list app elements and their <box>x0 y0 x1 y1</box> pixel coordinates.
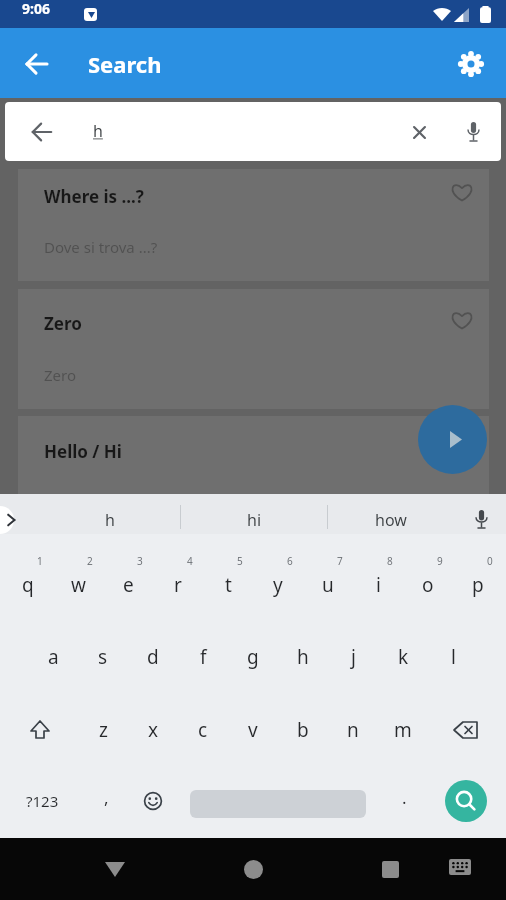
button[interactable] <box>129 778 177 824</box>
button[interactable]: . <box>380 774 428 820</box>
button[interactable] <box>91 845 139 893</box>
staticText: 0 <box>487 554 493 568</box>
button[interactable] <box>229 845 277 893</box>
staticText: v <box>248 717 258 743</box>
staticText: a <box>48 644 59 670</box>
staticText: h <box>93 120 103 142</box>
button[interactable] <box>447 40 495 88</box>
staticText: f <box>200 644 207 670</box>
button[interactable]: g <box>229 634 277 680</box>
staticText: . <box>402 786 407 809</box>
button[interactable]: y <box>254 562 302 608</box>
staticText: Zero <box>44 365 77 385</box>
button[interactable] <box>18 416 489 494</box>
button[interactable]: hi <box>181 500 327 540</box>
staticText: z <box>99 717 108 743</box>
staticText: h <box>297 644 309 670</box>
button[interactable] <box>366 845 414 893</box>
staticText: 9:06 <box>22 0 50 18</box>
staticText: q <box>22 572 34 598</box>
button[interactable] <box>418 405 487 474</box>
staticText: y <box>273 572 283 598</box>
button[interactable]: s <box>79 634 127 680</box>
staticText: , <box>104 786 109 809</box>
staticText: m <box>394 717 412 743</box>
staticText: l <box>451 644 456 670</box>
button[interactable]: x <box>129 707 177 753</box>
button[interactable] <box>18 169 489 281</box>
staticText: j <box>351 644 356 670</box>
button[interactable]: u <box>304 562 352 608</box>
button[interactable]: l <box>429 634 477 680</box>
staticText: d <box>147 644 159 670</box>
button[interactable]: h <box>40 500 180 540</box>
button[interactable]: i <box>354 562 402 608</box>
staticText: r <box>174 572 182 598</box>
button[interactable]: q <box>4 562 52 608</box>
button[interactable]: h <box>5 102 501 161</box>
staticText: ?123 <box>26 791 59 811</box>
staticText: u <box>322 572 334 598</box>
button[interactable]: a <box>29 634 77 680</box>
staticText: w <box>71 572 86 598</box>
button[interactable] <box>442 707 490 753</box>
staticText: 2 <box>87 554 93 568</box>
staticText: 4 <box>187 554 193 568</box>
button[interactable]: r <box>154 562 202 608</box>
staticText: 1 <box>37 554 43 568</box>
staticText: 6 <box>287 554 293 568</box>
button[interactable]: p <box>454 562 502 608</box>
button[interactable]: z <box>79 707 127 753</box>
staticText: 8 <box>387 554 393 568</box>
staticText: Dove si trova ...? <box>44 237 158 257</box>
staticText: b <box>297 717 309 743</box>
button[interactable]: how <box>327 500 455 540</box>
staticText: Where is ...? <box>44 185 144 208</box>
button[interactable]: d <box>129 634 177 680</box>
button[interactable]: o <box>404 562 452 608</box>
button[interactable]: k <box>379 634 427 680</box>
staticText: x <box>148 717 159 743</box>
staticText: how <box>375 509 407 531</box>
staticText: 3 <box>137 554 143 568</box>
button[interactable] <box>445 780 487 822</box>
button[interactable]: , <box>82 774 130 820</box>
staticText: g <box>247 644 259 670</box>
button[interactable]: e <box>104 562 152 608</box>
staticText: c <box>198 717 208 743</box>
staticText: 5 <box>237 554 243 568</box>
button[interactable]: j <box>329 634 377 680</box>
staticText: Search <box>88 49 162 79</box>
staticText: s <box>98 644 108 670</box>
button[interactable]: f <box>179 634 227 680</box>
button[interactable] <box>18 289 489 409</box>
staticText: n <box>347 717 359 743</box>
staticText: 9 <box>437 554 443 568</box>
button[interactable]: c <box>179 707 227 753</box>
button[interactable]: ?123 <box>16 778 68 824</box>
staticText: t <box>225 572 232 598</box>
staticText: o <box>422 572 434 598</box>
button[interactable] <box>13 68 61 116</box>
button[interactable]: m <box>379 707 427 753</box>
staticText: hi <box>247 509 262 531</box>
staticText: Hello / Hi <box>44 440 122 463</box>
button[interactable] <box>438 845 482 889</box>
button[interactable] <box>0 506 14 534</box>
button[interactable]: v <box>229 707 277 753</box>
button[interactable]: t <box>204 562 252 608</box>
button[interactable]: h <box>279 634 327 680</box>
staticText: e <box>123 572 134 598</box>
staticText: k <box>398 644 409 670</box>
staticText: h <box>105 509 115 531</box>
staticText: i <box>376 572 381 598</box>
staticText: 7 <box>337 554 343 568</box>
button[interactable]: n <box>329 707 377 753</box>
staticText: Zero <box>44 312 82 335</box>
button[interactable] <box>458 500 504 540</box>
button[interactable]: b <box>279 707 327 753</box>
staticText: p <box>472 572 484 598</box>
button[interactable] <box>16 707 64 753</box>
button[interactable]: w <box>54 562 102 608</box>
